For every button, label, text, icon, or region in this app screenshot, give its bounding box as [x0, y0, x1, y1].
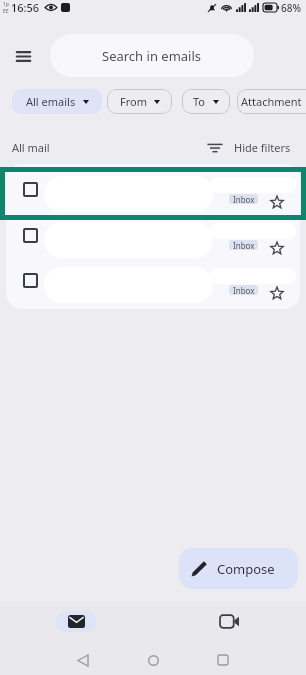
- staticText: To: [193, 94, 206, 109]
- button[interactable]: Select email: [6, 218, 300, 263]
- staticText: All emails: [26, 94, 76, 109]
- button[interactable]: Select email: [23, 273, 38, 288]
- button[interactable]: Star email: [268, 193, 285, 210]
- button[interactable]: Search in emails: [50, 34, 254, 77]
- button[interactable]: Home: [141, 648, 165, 672]
- button[interactable]: Open navigation drawer: [11, 46, 35, 66]
- button[interactable]: Select email: [6, 172, 300, 217]
- button[interactable]: Meet: [153, 602, 306, 645]
- button[interactable]: Hide filters: [206, 136, 291, 158]
- staticText: Hide filters: [234, 140, 291, 155]
- staticText: Inbox: [233, 285, 255, 295]
- staticText: Compose: [217, 560, 275, 578]
- staticText: EE: [3, 8, 9, 15]
- staticText: All mail: [12, 140, 50, 155]
- staticText: 68%: [281, 1, 301, 15]
- button[interactable]: Select email: [6, 263, 300, 308]
- staticText: Search in emails: [102, 47, 202, 65]
- button[interactable]: Recent apps: [211, 648, 235, 672]
- staticText: From: [120, 94, 147, 109]
- staticText: Inbox: [233, 240, 255, 250]
- button[interactable]: Attachment: [237, 89, 306, 114]
- button[interactable]: Star email: [268, 239, 285, 256]
- staticText: Attachment: [241, 94, 302, 109]
- button[interactable]: Star email: [268, 284, 285, 301]
- button[interactable]: Select email: [23, 228, 38, 243]
- button[interactable]: All emails: [12, 89, 102, 114]
- button[interactable]: To: [182, 89, 230, 114]
- button[interactable]: Select email: [23, 182, 38, 197]
- staticText: 16:56: [11, 0, 40, 15]
- button[interactable]: From: [107, 89, 172, 114]
- button[interactable]: Back: [71, 648, 95, 672]
- button[interactable]: Compose: [179, 548, 298, 589]
- staticText: 1p: [3, 1, 9, 8]
- staticText: Inbox: [233, 194, 255, 204]
- button[interactable]: Mail: [0, 602, 153, 645]
